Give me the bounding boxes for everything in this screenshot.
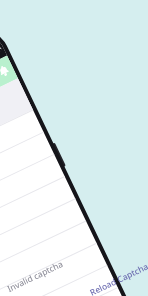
button[interactable]: Captcha screen phone mockup [0, 0, 148, 296]
